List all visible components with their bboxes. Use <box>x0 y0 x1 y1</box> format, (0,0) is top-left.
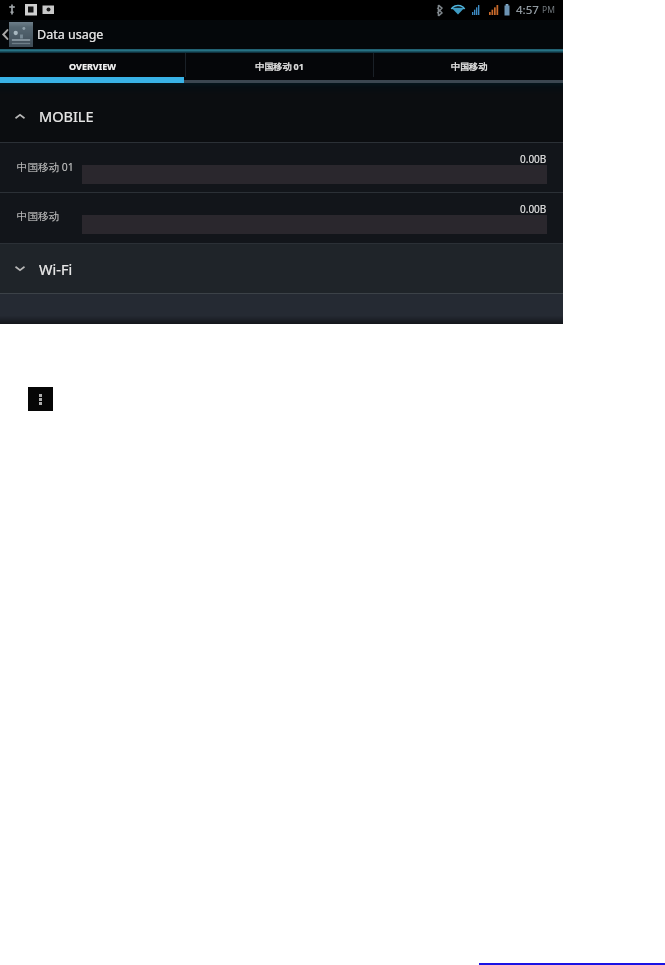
button[interactable]: MOBILE <box>0 91 563 141</box>
staticText: 4:57 <box>516 2 539 18</box>
button[interactable]: More options <box>28 387 53 411</box>
button[interactable]: 中国移动 01 <box>0 143 563 192</box>
button[interactable]: 中国移动 <box>0 193 563 243</box>
staticText: Wi-Fi <box>39 259 73 279</box>
staticText: 中国移动 01 <box>255 60 304 72</box>
button[interactable]: 中国移动 <box>374 53 563 77</box>
button[interactable]: Wi-Fi <box>0 244 563 293</box>
staticText: Data usage <box>37 26 104 43</box>
button[interactable]: Navigate up <box>0 20 9 49</box>
staticText: PM <box>542 4 555 16</box>
staticText: MOBILE <box>39 106 94 126</box>
button[interactable]: OVERVIEW <box>0 53 185 77</box>
staticText: 中国移动 <box>17 210 59 223</box>
staticText: 0.00B <box>520 202 547 216</box>
staticText: 0.00B <box>520 152 547 166</box>
button[interactable]: 中国移动 01 <box>186 53 373 77</box>
staticText: 中国移动 01 <box>17 160 74 174</box>
staticText: OVERVIEW <box>69 60 116 72</box>
staticText: 中国移动 <box>451 61 487 72</box>
